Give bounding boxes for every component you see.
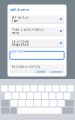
staticText: None — [12, 31, 20, 34]
staticText: EAP method — [12, 16, 29, 19]
button[interactable]: EAP method — [10, 15, 64, 23]
staticText: Identity — [12, 50, 23, 53]
staticText: PEAP — [12, 19, 19, 22]
staticText: Anonymous identity — [12, 65, 40, 68]
button[interactable]: Connect — [48, 70, 64, 74]
staticText: CA certificate — [12, 40, 30, 43]
staticText: Connect — [50, 70, 62, 73]
staticText: Cancel — [35, 70, 45, 73]
staticText: Phase 2 authentication — [12, 28, 44, 31]
staticText: Unspecified — [12, 43, 29, 46]
button[interactable]: CA certificate — [10, 39, 64, 47]
button[interactable]: Anonymous identity — [10, 64, 64, 72]
button[interactable]: Phase 2 authentication — [10, 27, 64, 35]
button[interactable]: Cancel — [33, 70, 48, 74]
staticText: wifi-home — [10, 7, 29, 12]
